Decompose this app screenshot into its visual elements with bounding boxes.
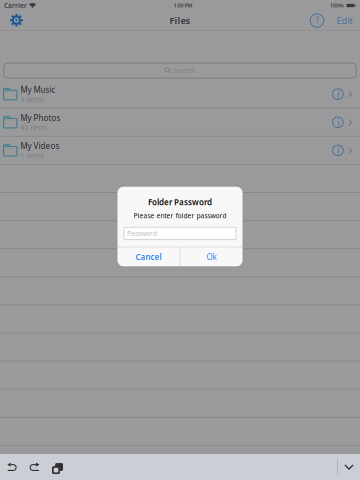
staticText: My Photos — [20, 112, 60, 123]
staticText: 4 items — [20, 95, 43, 104]
staticText: 1 items — [20, 151, 43, 160]
button[interactable]: My Music — [0, 81, 360, 109]
staticText: i — [337, 144, 339, 156]
button[interactable]: Cancel — [117, 247, 180, 266]
button[interactable]: Redo — [24, 454, 45, 480]
staticText: Files — [169, 14, 190, 27]
staticText: Password — [127, 229, 157, 238]
button[interactable]: Undo — [0, 454, 24, 480]
staticText: Edit — [336, 14, 352, 27]
staticText: Cancel — [136, 251, 162, 262]
staticText: Ok — [206, 251, 216, 262]
button[interactable]: Help — [305, 11, 329, 30]
staticText: My Videos — [20, 141, 59, 151]
button[interactable]: Ok — [180, 247, 242, 266]
staticText: Folder Password — [148, 197, 212, 207]
staticText: i — [337, 116, 339, 128]
staticText: Search — [173, 66, 195, 75]
staticText: 100% — [330, 2, 344, 9]
staticText: 45 items — [20, 123, 47, 132]
staticText: i — [337, 88, 339, 100]
button[interactable]: My Photos — [0, 109, 360, 137]
button[interactable]: Paste — [45, 454, 67, 480]
button[interactable]: Hide keyboard — [338, 454, 360, 480]
button[interactable]: Edit — [329, 11, 360, 30]
staticText: Carrier — [4, 1, 27, 10]
button[interactable]: Settings — [0, 11, 33, 30]
staticText: ? — [315, 15, 318, 26]
staticText: Please enter folder password — [133, 211, 226, 220]
staticText: 1:00 PM — [173, 2, 192, 9]
button[interactable]: My Videos — [0, 137, 360, 165]
staticText: My Music — [20, 84, 55, 95]
